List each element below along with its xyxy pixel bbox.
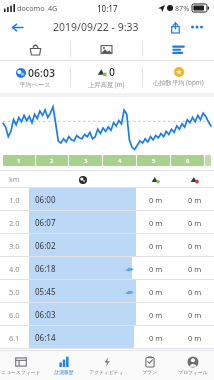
staticText: 0 m [149, 218, 163, 228]
staticText: 4 [118, 157, 122, 165]
button[interactable]: プラン [128, 351, 171, 380]
staticText: 2 [50, 157, 54, 165]
staticText: 10:17 [97, 3, 118, 14]
staticText: 06:14 [35, 332, 56, 343]
staticText: 4G [48, 3, 58, 13]
staticText: 0 m [149, 241, 163, 251]
button[interactable]: 心拍数平均 (bpm) [143, 61, 214, 93]
button[interactable]: More options [187, 17, 207, 37]
staticText: 0 [109, 65, 116, 79]
staticText: 0 m [149, 195, 163, 205]
staticText: 06:03 [28, 66, 55, 80]
staticText: アクティビティ [89, 369, 124, 375]
button[interactable]: 4.0 [0, 257, 214, 280]
staticText: 0 m [188, 218, 202, 228]
staticText: 5.0 [9, 287, 20, 297]
button[interactable]: Map [0, 38, 70, 60]
button[interactable]: プロフィール [171, 351, 214, 380]
staticText: 0 m [149, 310, 163, 320]
button[interactable]: 6.1 [0, 326, 214, 349]
staticText: 0 m [149, 264, 163, 274]
button[interactable]: Stats [143, 38, 214, 60]
staticText: 2.0 [9, 218, 20, 228]
staticText: 6 [186, 157, 190, 165]
button[interactable]: 1.0 [0, 188, 214, 211]
staticText: 1 [17, 157, 21, 165]
staticText: docomo [17, 3, 45, 13]
staticText: 05:45 [35, 286, 56, 297]
staticText: プロフィール [178, 369, 208, 375]
staticText: 0 m [188, 241, 202, 251]
staticText: プラン [142, 369, 157, 375]
staticText: 上昇高度 (m) [88, 80, 125, 89]
staticText: 0 m [188, 287, 202, 297]
button[interactable]: Share [165, 17, 185, 37]
staticText: 0 m [188, 264, 202, 274]
button[interactable]: 6.0 [0, 303, 214, 326]
staticText: 0 m [188, 333, 202, 343]
button[interactable]: 06:03 [0, 61, 70, 93]
staticText: 4.0 [9, 264, 20, 274]
staticText: 計測履歴 [54, 369, 74, 375]
button[interactable]: ニュースフィード [0, 351, 42, 380]
button[interactable]: 3.0 [0, 234, 214, 257]
button[interactable]: Photos [71, 38, 142, 60]
staticText: 1.0 [9, 195, 20, 205]
staticText: 06:02 [35, 240, 56, 251]
staticText: 0 m [149, 287, 163, 297]
staticText: km [9, 175, 20, 185]
staticText: 0 m [188, 310, 202, 320]
staticText: ニュースフィード [1, 369, 41, 375]
staticText: 2019/09/22 - 9:33 [53, 20, 139, 34]
staticText: 06:18 [35, 263, 56, 274]
staticText: 0 m [188, 195, 202, 205]
staticText: 06:03 [35, 309, 56, 320]
staticText: 06:00 [35, 194, 56, 205]
staticText: 3.0 [9, 241, 20, 251]
staticText: 5 [152, 157, 156, 165]
staticText: 心拍数平均 (bpm) [153, 78, 204, 87]
button[interactable]: 0 [71, 61, 142, 93]
staticText: 6.1 [9, 333, 20, 343]
button[interactable]: 2.0 [0, 211, 214, 234]
staticText: 3 [84, 157, 88, 165]
staticText: 87% [175, 3, 190, 13]
staticText: 06:07 [35, 217, 56, 228]
staticText: 平均ペース [19, 81, 51, 89]
button[interactable]: アクティビティ [85, 351, 128, 380]
button[interactable]: Back [7, 17, 27, 37]
button[interactable]: 計測履歴 [42, 351, 85, 380]
button[interactable]: 5.0 [0, 280, 214, 303]
staticText: 6.0 [9, 310, 20, 320]
staticText: 0 m [149, 333, 163, 343]
